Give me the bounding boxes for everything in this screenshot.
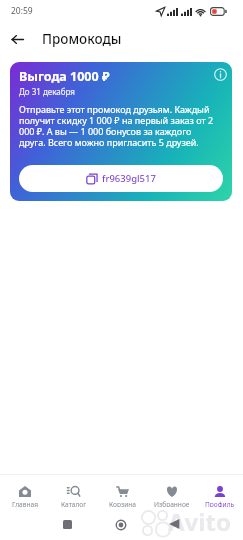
- button[interactable]: Выгода 1000 ₽: [10, 62, 232, 201]
- button[interactable]: Избранное: [147, 475, 196, 507]
- staticText: Профиль: [205, 500, 235, 507]
- staticText: fr9639gl517: [102, 172, 156, 185]
- staticText: Каталог: [61, 500, 87, 507]
- button[interactable]: Корзина: [98, 475, 147, 507]
- button[interactable]: Back: [0, 22, 34, 56]
- staticText: Отправьте этот промокод друзьям. Каждый …: [19, 103, 218, 148]
- button[interactable]: fr9639gl517: [19, 165, 223, 192]
- button[interactable]: Recent apps: [63, 520, 72, 529]
- button[interactable]: Главная: [0, 475, 49, 507]
- button[interactable]: Профиль: [196, 475, 243, 507]
- staticText: Избранное: [154, 500, 190, 507]
- staticText: Корзина: [109, 500, 136, 507]
- button[interactable]: Back: [168, 518, 180, 530]
- staticText: Avito: [168, 505, 231, 538]
- button[interactable]: Info: [213, 67, 227, 81]
- staticText: Главная: [12, 500, 38, 507]
- staticText: До 31 декабря: [19, 86, 75, 97]
- button[interactable]: Каталог: [49, 475, 98, 507]
- button[interactable]: Home: [114, 518, 128, 532]
- staticText: Промокоды: [42, 30, 122, 48]
- staticText: 20:59: [11, 5, 33, 17]
- staticText: Выгода 1000 ₽: [19, 68, 110, 85]
